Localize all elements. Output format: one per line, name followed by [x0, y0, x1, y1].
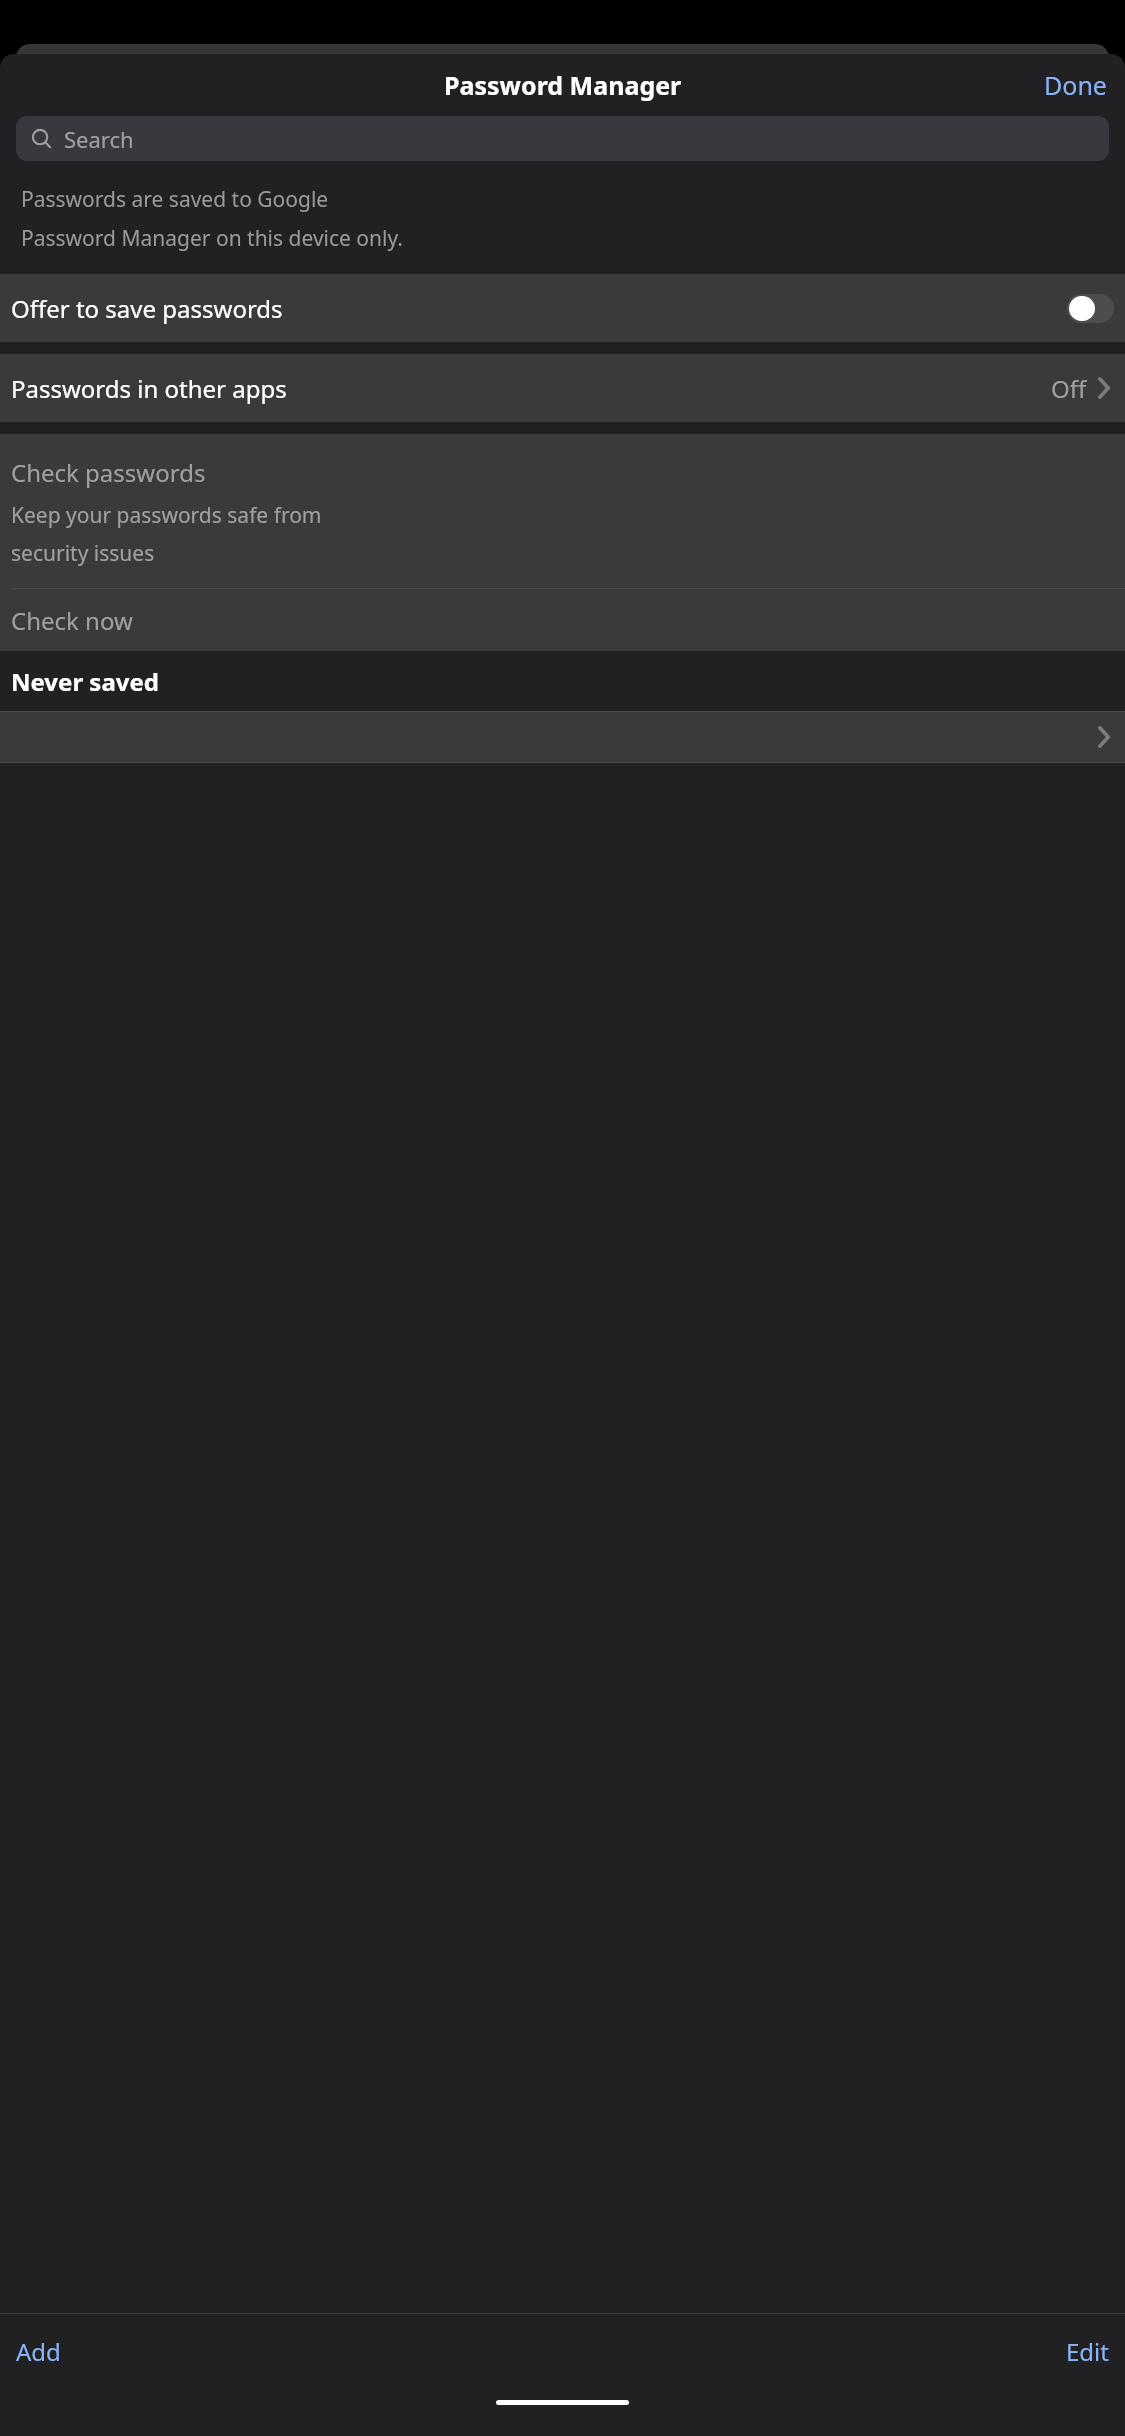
staticText: Search	[64, 124, 134, 154]
button[interactable]: Search	[16, 116, 1109, 161]
staticText: security issues	[11, 539, 155, 568]
staticText: Offer to save passwords	[11, 292, 1067, 325]
staticText: Password Manager	[444, 68, 682, 102]
staticText: Edit	[1066, 2335, 1109, 2368]
staticText: Check passwords	[11, 456, 206, 489]
staticText: Off	[1051, 372, 1087, 405]
staticText: Add	[16, 2335, 61, 2368]
staticText: Done	[1044, 68, 1107, 102]
other: Offer to save passwords toggle	[1067, 294, 1114, 323]
staticText: Password Manager on this device only.	[21, 224, 403, 253]
button[interactable]: Check passwords	[0, 434, 1125, 588]
staticText: Never saved	[11, 665, 159, 698]
button[interactable]: Check now	[0, 589, 1125, 651]
staticText: Keep your passwords safe from	[11, 501, 322, 530]
button[interactable]: Add	[0, 2325, 77, 2378]
button[interactable]: Done	[1026, 60, 1125, 110]
button[interactable]: Passwords in other apps	[0, 354, 1125, 422]
staticText: Passwords in other apps	[11, 372, 1051, 405]
staticText: Passwords are saved to Google	[21, 185, 329, 214]
button[interactable]: Edit	[1050, 2325, 1125, 2378]
staticText: Check now	[11, 604, 133, 637]
button[interactable]: Offer to save passwords	[0, 274, 1125, 342]
